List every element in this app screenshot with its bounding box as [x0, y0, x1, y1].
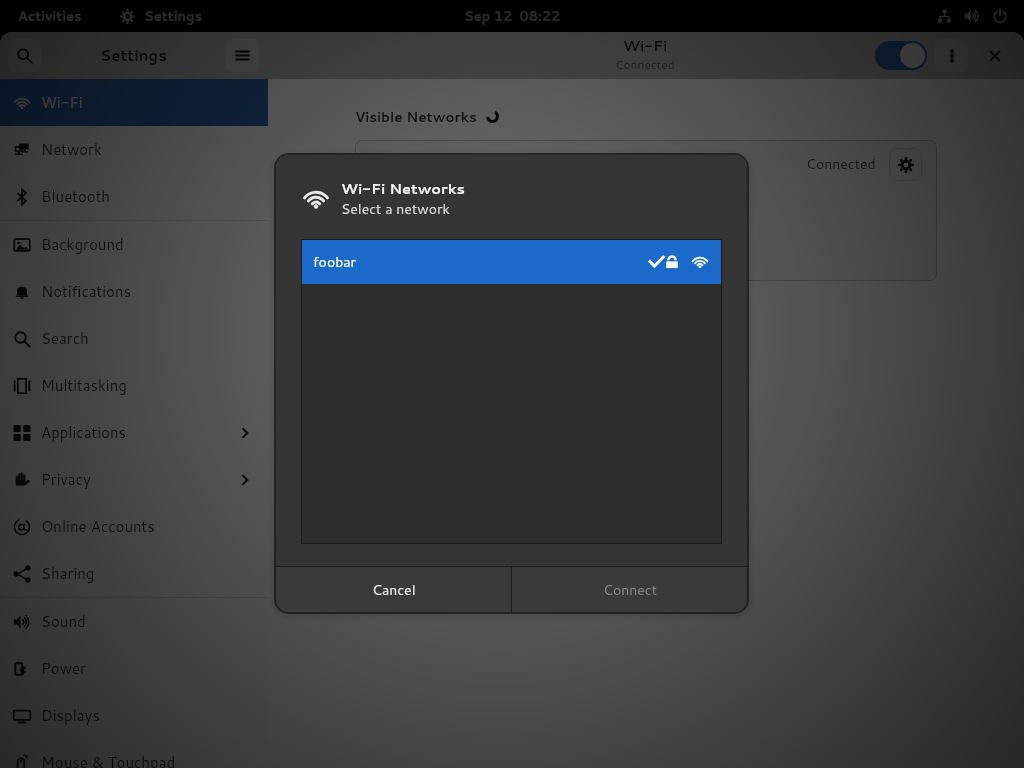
staticText: Bluetooth: [41, 186, 111, 207]
button[interactable]: System menu: [929, 3, 1016, 29]
staticText: Activities: [18, 7, 82, 25]
button[interactable]: Background: [0, 221, 268, 268]
button[interactable]: Close: [981, 42, 1009, 70]
button[interactable]: Cancel: [276, 567, 511, 612]
staticText: foobar: [313, 252, 357, 272]
staticText: Select a network: [341, 199, 450, 219]
button[interactable]: Bluetooth: [0, 173, 268, 220]
button[interactable]: Sep 12 08:22: [456, 2, 569, 30]
staticText: Settings: [100, 45, 167, 66]
button[interactable]: Notifications: [0, 268, 268, 315]
button[interactable]: Main menu: [226, 39, 259, 72]
staticText: Mouse & Touchpad: [41, 752, 176, 768]
staticText: Sep 12 08:22: [464, 7, 561, 25]
staticText: Wi-Fi: [41, 92, 83, 113]
staticText: Connected: [615, 56, 675, 73]
staticText: Privacy: [41, 469, 91, 490]
button[interactable]: Settings: [112, 2, 210, 30]
button[interactable]: Wi-Fi on: [875, 41, 927, 70]
staticText: Wi-Fi: [623, 35, 668, 56]
staticText: Power: [41, 658, 86, 679]
button[interactable]: Network: [0, 126, 268, 173]
button[interactable]: Displays: [0, 692, 268, 739]
staticText: Cancel: [372, 580, 416, 600]
staticText: Displays: [41, 705, 100, 726]
button[interactable]: Activities: [10, 2, 90, 30]
button[interactable]: foobar: [301, 239, 722, 284]
button[interactable]: Sound: [0, 598, 268, 645]
button[interactable]: Wi-Fi: [0, 79, 268, 126]
button[interactable]: Network settings: [889, 148, 922, 181]
staticText: Visible Networks: [355, 107, 477, 126]
staticText: Online Accounts: [41, 516, 155, 537]
staticText: Network: [41, 139, 102, 160]
button[interactable]: Mouse & Touchpad: [0, 739, 268, 768]
staticText: Background: [41, 234, 124, 255]
staticText: Wi-Fi Networks: [341, 178, 465, 199]
staticText: Multitasking: [41, 375, 127, 396]
button[interactable]: Sharing: [0, 550, 268, 597]
button[interactable]: Privacy: [0, 456, 268, 503]
staticText: Connect: [603, 580, 657, 600]
button[interactable]: Applications: [0, 409, 268, 456]
staticText: Sharing: [41, 563, 95, 584]
button[interactable]: Search: [0, 315, 268, 362]
staticText: Applications: [41, 422, 126, 443]
staticText: Settings: [144, 7, 202, 25]
button[interactable]: Connect: [512, 567, 747, 612]
button[interactable]: Search: [8, 39, 41, 72]
button[interactable]: Multitasking: [0, 362, 268, 409]
staticText: Connected: [806, 154, 876, 174]
staticText: Search: [41, 328, 89, 349]
button[interactable]: Online Accounts: [0, 503, 268, 550]
staticText: Notifications: [41, 281, 131, 302]
button[interactable]: More options: [935, 39, 968, 72]
staticText: Sound: [41, 611, 86, 632]
button[interactable]: Power: [0, 645, 268, 692]
